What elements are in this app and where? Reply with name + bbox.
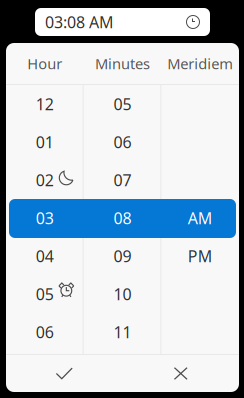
staticText: 12 (36, 93, 54, 115)
staticText: 04 (36, 245, 54, 267)
staticText: 09 (113, 245, 131, 267)
staticText: 01 (36, 131, 54, 153)
staticText: 05 (113, 93, 131, 115)
staticText: 06 (113, 131, 131, 153)
staticText: AM (188, 207, 213, 229)
staticText: Hour (27, 54, 62, 73)
staticText: 07 (113, 169, 131, 191)
staticText: PM (188, 245, 213, 267)
button[interactable]: Cancel (122, 355, 239, 391)
staticText: 11 (113, 321, 131, 343)
button[interactable]: Confirm (6, 355, 122, 391)
staticText: 10 (113, 283, 131, 305)
staticText: 08 (113, 207, 131, 229)
staticText: Meridiem (167, 54, 233, 73)
staticText: 05 (36, 283, 54, 305)
staticText: Minutes (95, 54, 150, 73)
staticText: 03:08 AM (45, 11, 114, 33)
button[interactable]: 03:08 AM (35, 8, 210, 36)
staticText: 02 (36, 169, 54, 191)
staticText: 03 (36, 207, 54, 229)
staticText: 06 (36, 321, 54, 343)
